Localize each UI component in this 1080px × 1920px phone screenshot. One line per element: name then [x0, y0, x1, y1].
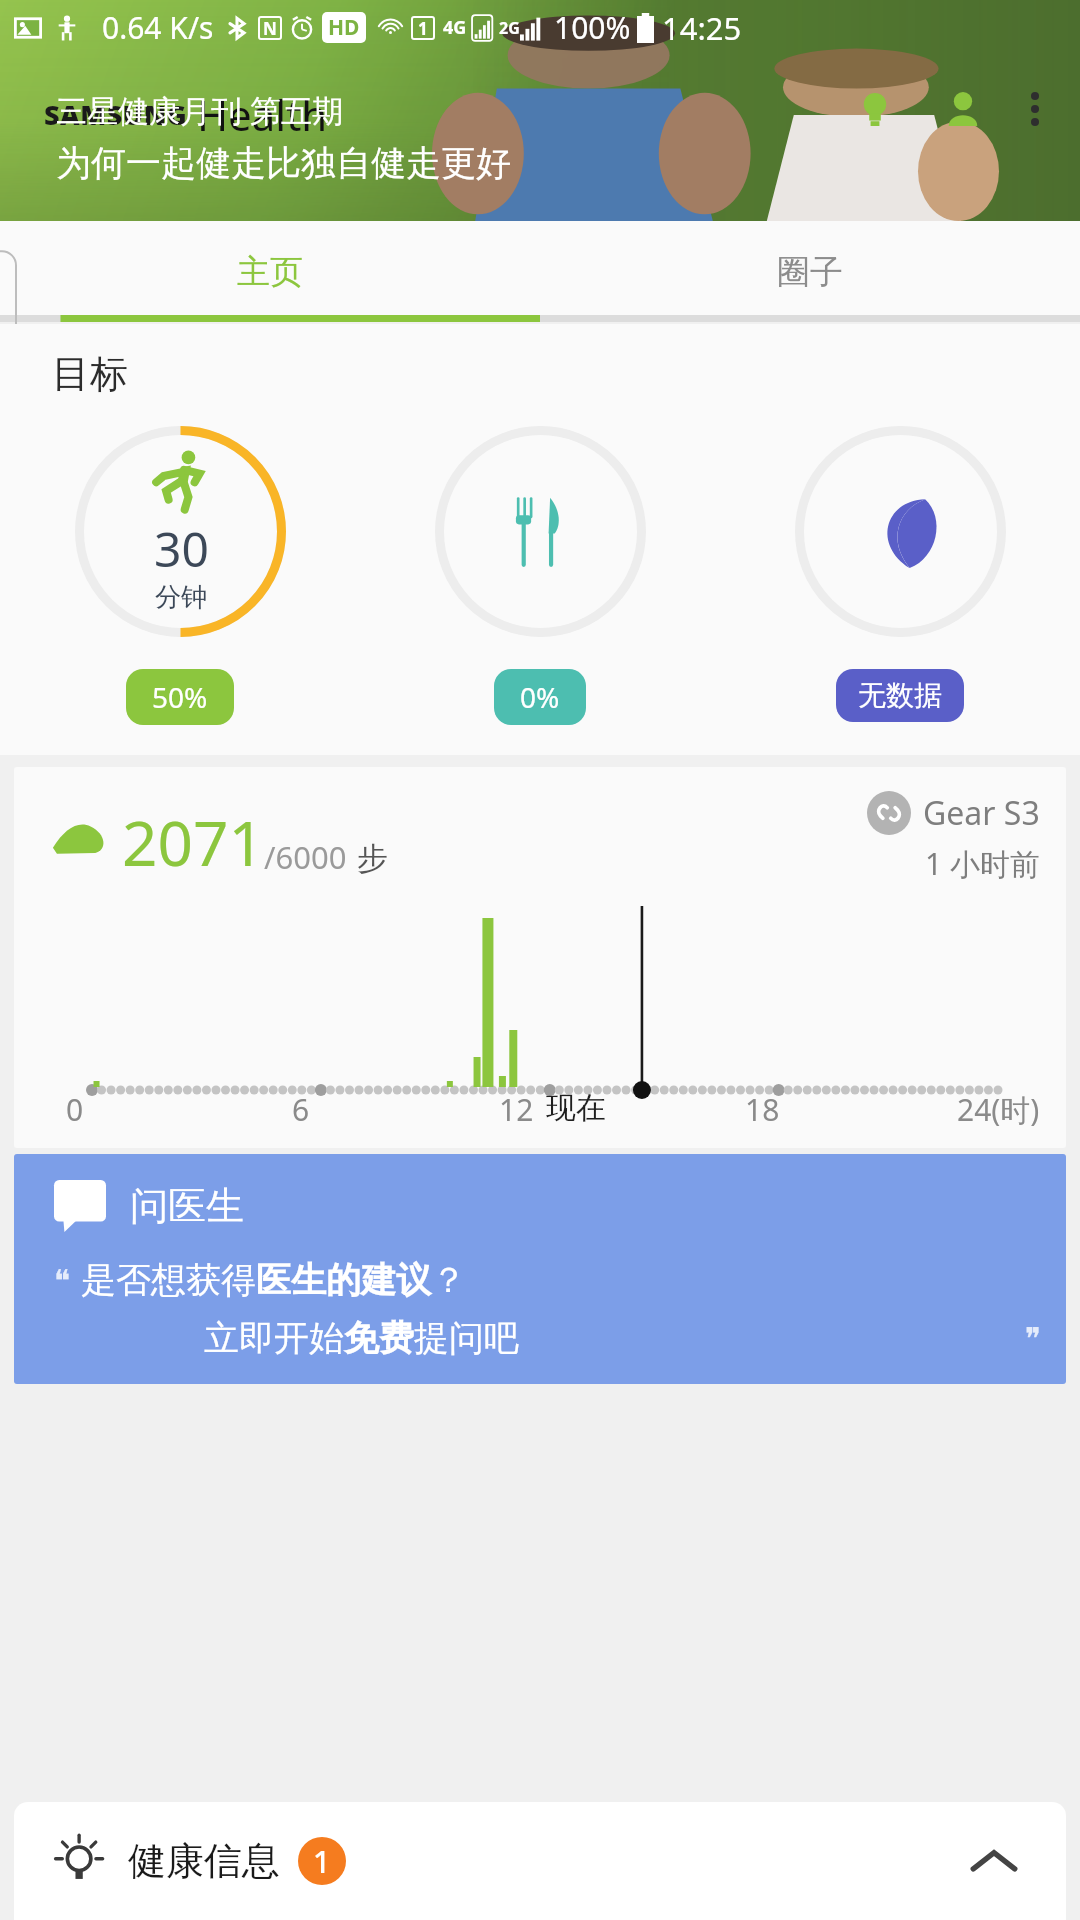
button[interactable]: Expand — [962, 1829, 1026, 1893]
staticText: 分钟 — [155, 581, 207, 614]
staticText: 24(时) — [957, 1089, 1040, 1130]
staticText: N — [263, 17, 277, 40]
staticText: 0 — [66, 1089, 84, 1130]
staticText: 0.64 K/s — [102, 7, 214, 48]
staticText: Health — [197, 86, 328, 143]
staticText: 立即开始 — [204, 1316, 344, 1360]
staticText: 2G — [499, 17, 520, 39]
staticText: 1 小时前 — [925, 843, 1040, 884]
staticText: ❝ — [54, 1263, 71, 1298]
button[interactable]: 圈子 — [540, 221, 1080, 322]
staticText: 是否想获得 — [81, 1258, 256, 1302]
staticText: 100% — [554, 7, 631, 48]
button[interactable]: Goal 50% — [0, 424, 360, 725]
button[interactable]: Tips — [844, 78, 906, 140]
staticText: 无数据 — [858, 678, 942, 713]
staticText: 1 — [313, 1841, 331, 1882]
staticText: 现在 — [546, 1089, 606, 1127]
button[interactable]: 0% — [520, 678, 560, 716]
staticText: 6 — [292, 1089, 310, 1130]
staticText: 三星健康月刊 第五期 — [56, 89, 344, 131]
staticText: SAMSUNG — [44, 96, 188, 133]
staticText: 医生的建议 — [256, 1258, 431, 1302]
staticText: 健康信息 — [128, 1837, 280, 1885]
button[interactable]: Goal 无数据 — [720, 424, 1080, 722]
staticText: HD — [328, 13, 360, 42]
staticText: 圈子 — [777, 251, 843, 293]
staticText: 目标 — [52, 350, 128, 398]
button[interactable]: 健康信息 — [14, 1802, 1066, 1920]
staticText: ❞ — [1025, 1321, 1042, 1356]
staticText: 18 — [745, 1089, 780, 1130]
staticText: 提问吧 — [414, 1316, 519, 1360]
button[interactable]: 2071 — [14, 767, 1066, 1148]
button[interactable]: 无数据 — [858, 678, 942, 713]
button[interactable]: 主页 — [0, 221, 540, 322]
staticText: 12 — [499, 1089, 534, 1130]
staticText: ？ — [431, 1258, 466, 1302]
staticText: Gear S3 — [923, 791, 1040, 835]
button[interactable]: 问医生 — [14, 1154, 1066, 1384]
staticText: 50% — [152, 678, 208, 716]
staticText: 免费 — [344, 1316, 414, 1360]
staticText: 1 — [418, 17, 428, 40]
staticText: 0% — [520, 678, 560, 716]
staticText: 4G — [443, 15, 467, 40]
staticText: 30 — [154, 516, 209, 581]
button[interactable]: Profile — [932, 78, 994, 140]
staticText: /6000 — [264, 836, 347, 878]
staticText: 步 — [357, 839, 388, 878]
button[interactable]: Goal 0% — [360, 424, 720, 725]
staticText: 14:25 — [662, 7, 742, 49]
button[interactable]: 50% — [152, 678, 208, 716]
staticText: 为何一起健走比独自健走更好 — [56, 141, 511, 185]
staticText: 问医生 — [130, 1182, 244, 1230]
staticText: 2071 — [122, 800, 264, 884]
staticText: 主页 — [237, 251, 303, 293]
button[interactable]: More options — [1008, 82, 1062, 136]
